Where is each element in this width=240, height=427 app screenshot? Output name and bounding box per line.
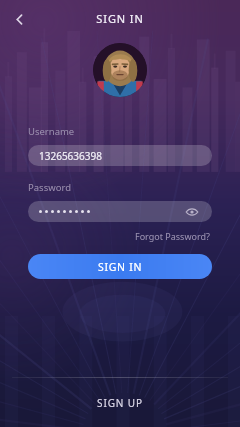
button[interactable]: Profile photo xyxy=(93,43,147,97)
button[interactable]: Forgot Password? xyxy=(133,228,212,244)
staticText: Password xyxy=(28,181,71,194)
button[interactable]: SIGN IN xyxy=(28,254,212,279)
button[interactable]: Show password xyxy=(183,203,201,221)
staticText: SIGN UP xyxy=(97,396,144,410)
staticText: SIGN IN xyxy=(98,260,143,274)
staticText: SIGN IN xyxy=(96,11,144,26)
staticText: Username xyxy=(28,125,75,138)
staticText: 13265636398 xyxy=(39,149,102,163)
button[interactable]: 13265636398 xyxy=(28,145,212,166)
button[interactable]: Back xyxy=(4,4,34,34)
staticText: Forgot Password? xyxy=(135,230,210,242)
button[interactable]: SIGN UP xyxy=(0,378,240,427)
button[interactable]: Show password xyxy=(28,201,212,222)
